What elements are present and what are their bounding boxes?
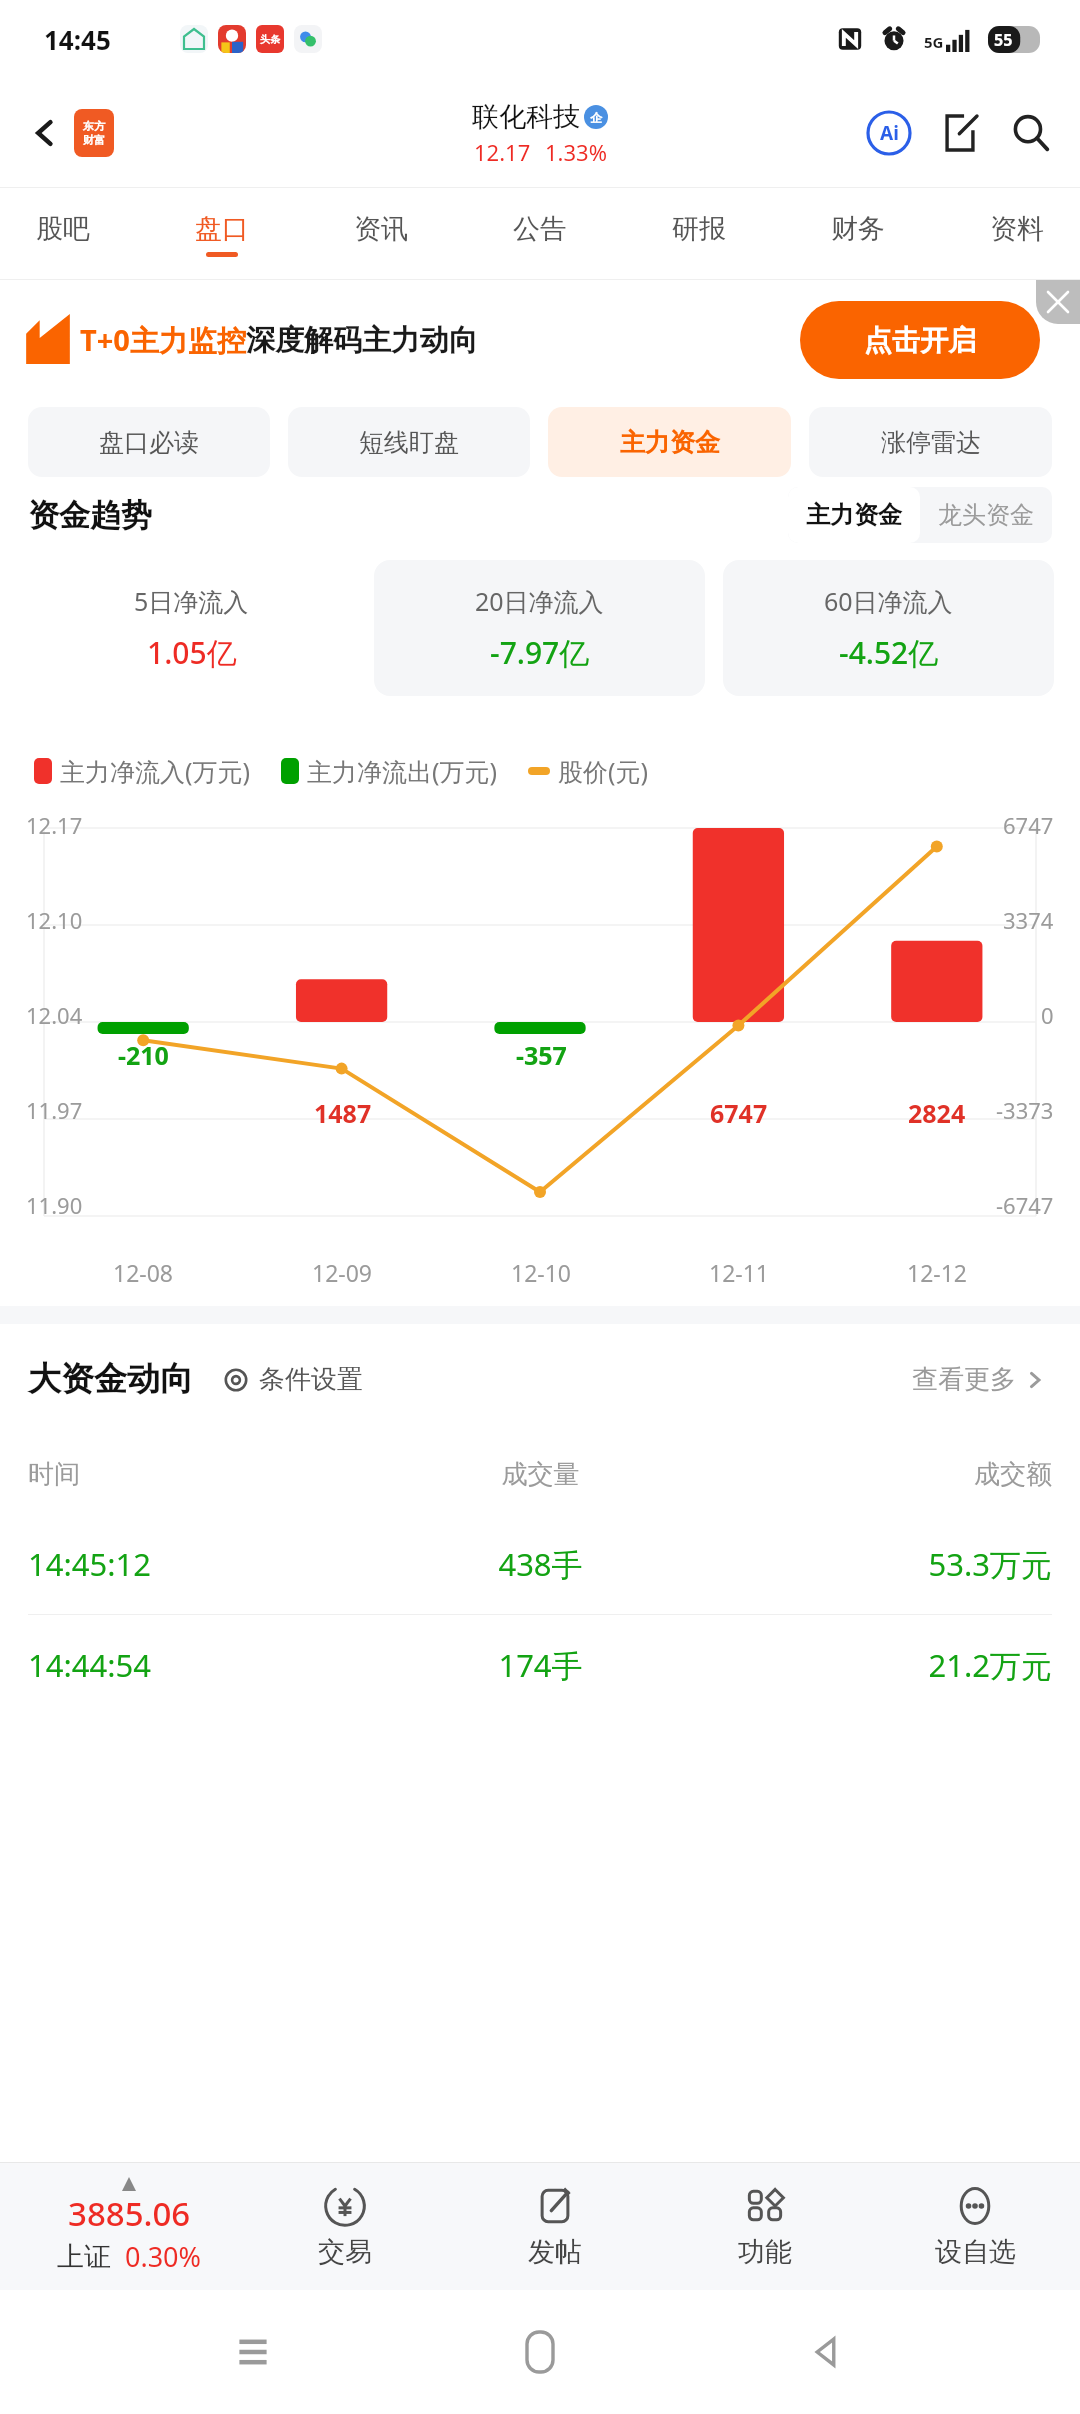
staticText: 涨停雷达 — [881, 427, 981, 458]
staticText: 设自选 — [935, 2235, 1016, 2269]
staticText: 12-08 — [113, 1257, 174, 1288]
staticText: 功能 — [738, 2235, 792, 2269]
staticText: 11.90 — [26, 1190, 83, 1220]
staticText: T+0主力监控 — [80, 320, 246, 360]
button[interactable]: 公告 — [503, 204, 577, 265]
staticText: 联化科技 — [472, 100, 580, 134]
staticText: 短线盯盘 — [359, 427, 459, 458]
staticText: 股价(元) — [558, 754, 649, 788]
button[interactable]: 盘口必读 — [28, 407, 270, 477]
staticText: 成交额 — [711, 1458, 1052, 1491]
staticText: 12.17 — [474, 137, 531, 167]
button[interactable]: 龙头资金 — [920, 487, 1052, 543]
staticText: 财富 — [83, 133, 105, 147]
staticText: -210 — [118, 1038, 169, 1072]
button[interactable]: Home — [505, 2317, 575, 2387]
staticText: 12-11 — [709, 1257, 770, 1288]
staticText: 6747 — [1003, 810, 1054, 840]
staticText: 11.97 — [26, 1095, 83, 1125]
button[interactable]: Back — [22, 103, 120, 163]
staticText: 0.30% — [125, 2238, 202, 2275]
button[interactable]: 短线盯盘 — [288, 407, 530, 477]
button[interactable]: 条件设置 — [215, 1357, 369, 1402]
button[interactable]: 股吧 — [26, 204, 100, 265]
staticText: 14:44:54 — [28, 1644, 370, 1686]
staticText: -3373 — [996, 1095, 1054, 1125]
button[interactable]: AI — [866, 110, 912, 156]
staticText: 12.17 — [26, 810, 83, 840]
staticText: 企 — [590, 110, 602, 125]
button[interactable]: 查看更多 — [906, 1357, 1052, 1402]
staticText: -7.97亿 — [490, 632, 590, 673]
staticText: 头条 — [260, 33, 280, 46]
staticText: 20日净流入 — [475, 584, 604, 618]
button[interactable]: 点击开启 — [800, 301, 1040, 379]
staticText: -4.52亿 — [839, 632, 939, 673]
button[interactable]: 14:45:12 — [0, 1514, 1080, 1614]
staticText: 2824 — [908, 1096, 966, 1130]
button[interactable]: 交易 — [240, 2162, 450, 2290]
staticText: 3885.06 — [68, 2191, 191, 2236]
button[interactable]: 20日净流入 — [374, 546, 705, 736]
staticText: 55 — [994, 29, 1013, 51]
staticText: 12-12 — [907, 1257, 968, 1288]
staticText: 盘口 — [195, 212, 249, 246]
staticText: 12-09 — [312, 1257, 373, 1288]
staticText: 12.04 — [26, 1000, 83, 1030]
staticText: 14:45:12 — [28, 1543, 370, 1585]
button[interactable]: 设自选 — [870, 2162, 1080, 2290]
staticText: 条件设置 — [259, 1363, 363, 1396]
staticText: 14:45 — [44, 22, 111, 57]
button[interactable]: 资讯 — [344, 204, 418, 265]
button[interactable]: 发帖 — [450, 2162, 660, 2290]
staticText: 资金趋势 — [28, 496, 152, 535]
staticText: 12.10 — [26, 905, 83, 935]
button[interactable]: 14:44:54 — [0, 1615, 1080, 1715]
staticText: 5G — [924, 32, 944, 52]
button[interactable]: Back — [793, 2317, 863, 2387]
staticText: 1487 — [314, 1096, 372, 1130]
staticText: Ai — [880, 120, 899, 146]
staticText: 60日净流入 — [824, 584, 953, 618]
staticText: 53.3万元 — [711, 1543, 1052, 1585]
button[interactable]: 5日净流入 — [26, 546, 356, 736]
staticText: 3374 — [1003, 905, 1054, 935]
button[interactable]: 功能 — [660, 2162, 870, 2290]
button[interactable]: 盘口 — [185, 204, 259, 265]
staticText: 1.33% — [545, 137, 607, 167]
staticText: 6747 — [710, 1096, 768, 1130]
staticText: 交易 — [318, 2235, 372, 2269]
staticText: 5日净流入 — [134, 584, 249, 618]
staticText: 上证 — [57, 2240, 111, 2274]
staticText: 资讯 — [354, 212, 408, 246]
staticText: 财务 — [831, 212, 885, 246]
button[interactable]: 研报 — [662, 204, 736, 265]
staticText: 东方 — [83, 119, 105, 133]
button[interactable]: 60日净流入 — [723, 546, 1054, 736]
staticText: 大资金动向 — [28, 1358, 193, 1400]
staticText: 主力资金 — [806, 500, 902, 530]
button[interactable]: 主力资金 — [548, 407, 791, 477]
staticText: -6747 — [996, 1190, 1054, 1220]
staticText: 查看更多 — [912, 1363, 1016, 1396]
staticText: 龙头资金 — [938, 500, 1034, 530]
staticText: 点击开启 — [864, 323, 976, 358]
staticText: 主力净流出(万元) — [307, 754, 498, 788]
staticText: 主力净流入(万元) — [60, 754, 251, 788]
button[interactable]: 财务 — [821, 204, 895, 265]
staticText: 盘口必读 — [99, 427, 199, 458]
staticText: 主力资金 — [620, 427, 720, 458]
button[interactable]: Recents — [218, 2317, 288, 2387]
staticText: 研报 — [672, 212, 726, 246]
button[interactable]: 资料 — [980, 204, 1054, 265]
button[interactable]: Share — [938, 111, 982, 155]
button[interactable]: 主力资金 — [788, 487, 920, 543]
button[interactable]: 3885.06 — [0, 2177, 240, 2275]
button[interactable]: 涨停雷达 — [809, 407, 1052, 477]
staticText: 时间 — [28, 1458, 370, 1491]
button[interactable]: Search — [1008, 110, 1054, 156]
button[interactable]: Close — [1036, 280, 1080, 324]
staticText: 12-10 — [511, 1257, 572, 1288]
staticText: 资料 — [990, 212, 1044, 246]
staticText: 股吧 — [36, 212, 90, 246]
